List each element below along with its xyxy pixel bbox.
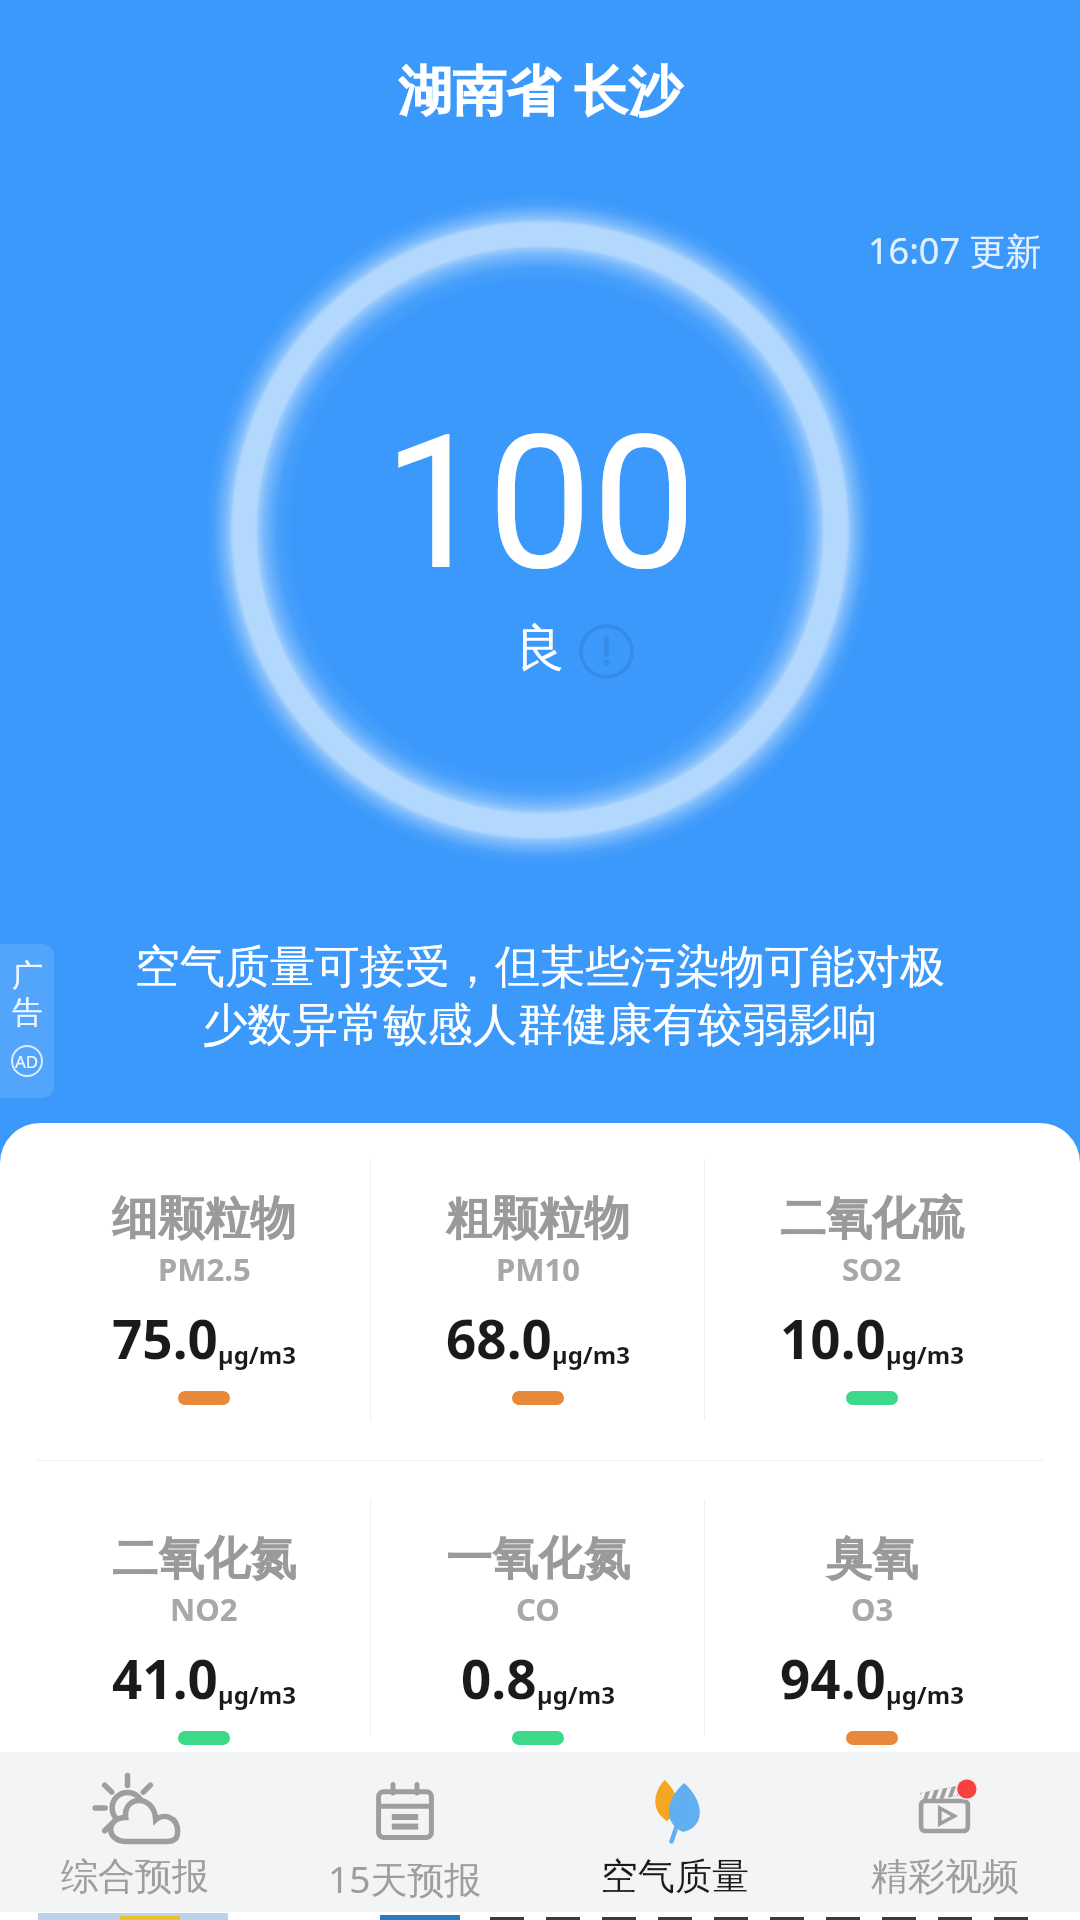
staticText: 41.0 <box>112 1642 218 1714</box>
button[interactable]: 一氧化氮 <box>371 1461 705 1752</box>
staticText: O3 <box>851 1588 894 1630</box>
button[interactable]: 二氧化氮 <box>37 1461 371 1752</box>
button[interactable]: 粗颗粒物 <box>371 1123 705 1460</box>
staticText: 空气质量可接受，但某些污染物可能对极 少数异常敏感人群健康有较弱影响 <box>0 939 1080 1054</box>
button[interactable]: 细颗粒物 <box>37 1123 371 1460</box>
staticText: 臭氧 <box>826 1530 918 1588</box>
staticText: 空气质量 <box>601 1853 749 1900</box>
staticText: µg/m3 <box>552 1338 630 1371</box>
button[interactable]: 综合预报 <box>0 1752 270 1912</box>
staticText: CO <box>516 1588 560 1630</box>
button[interactable]: 精彩视频 <box>810 1752 1080 1912</box>
staticText: µg/m3 <box>886 1678 964 1711</box>
button[interactable]: 空气质量 <box>540 1752 810 1912</box>
staticText: 湖南省 长沙 <box>398 52 683 126</box>
staticText: SO2 <box>842 1248 902 1290</box>
staticText: 68.0 <box>446 1302 552 1374</box>
staticText: 广 告 <box>12 956 43 1033</box>
staticText: 94.0 <box>780 1642 886 1714</box>
staticText: µg/m3 <box>537 1678 615 1711</box>
staticText: AD <box>15 1050 39 1073</box>
staticText: µg/m3 <box>886 1338 964 1371</box>
button[interactable]: 二氧化硫 <box>705 1123 1039 1460</box>
staticText: 二氧化氮 <box>112 1530 296 1588</box>
button[interactable]: 广告 <box>0 944 54 1098</box>
staticText: 100 <box>383 394 697 612</box>
staticText: 精彩视频 <box>871 1853 1019 1900</box>
staticText: 10.0 <box>780 1302 886 1374</box>
button[interactable]: 臭氧 <box>705 1461 1039 1752</box>
staticText: 综合预报 <box>61 1853 209 1900</box>
staticText: 75.0 <box>112 1302 218 1374</box>
staticText: 16:07 更新 <box>868 226 1042 275</box>
staticText: 良 <box>515 617 565 680</box>
staticText: 一氧化氮 <box>446 1530 630 1588</box>
staticText: 15天预报 <box>328 1853 482 1904</box>
staticText: 粗颗粒物 <box>446 1190 630 1248</box>
staticText: NO2 <box>170 1588 238 1630</box>
button[interactable]: 15天预报 <box>270 1752 540 1912</box>
staticText: PM2.5 <box>158 1248 251 1290</box>
staticText: 二氧化硫 <box>780 1190 964 1248</box>
staticText: µg/m3 <box>218 1338 296 1371</box>
staticText: PM10 <box>496 1248 580 1290</box>
staticText: µg/m3 <box>218 1678 296 1711</box>
staticText: 细颗粒物 <box>112 1190 296 1248</box>
staticText: 0.8 <box>461 1642 537 1714</box>
